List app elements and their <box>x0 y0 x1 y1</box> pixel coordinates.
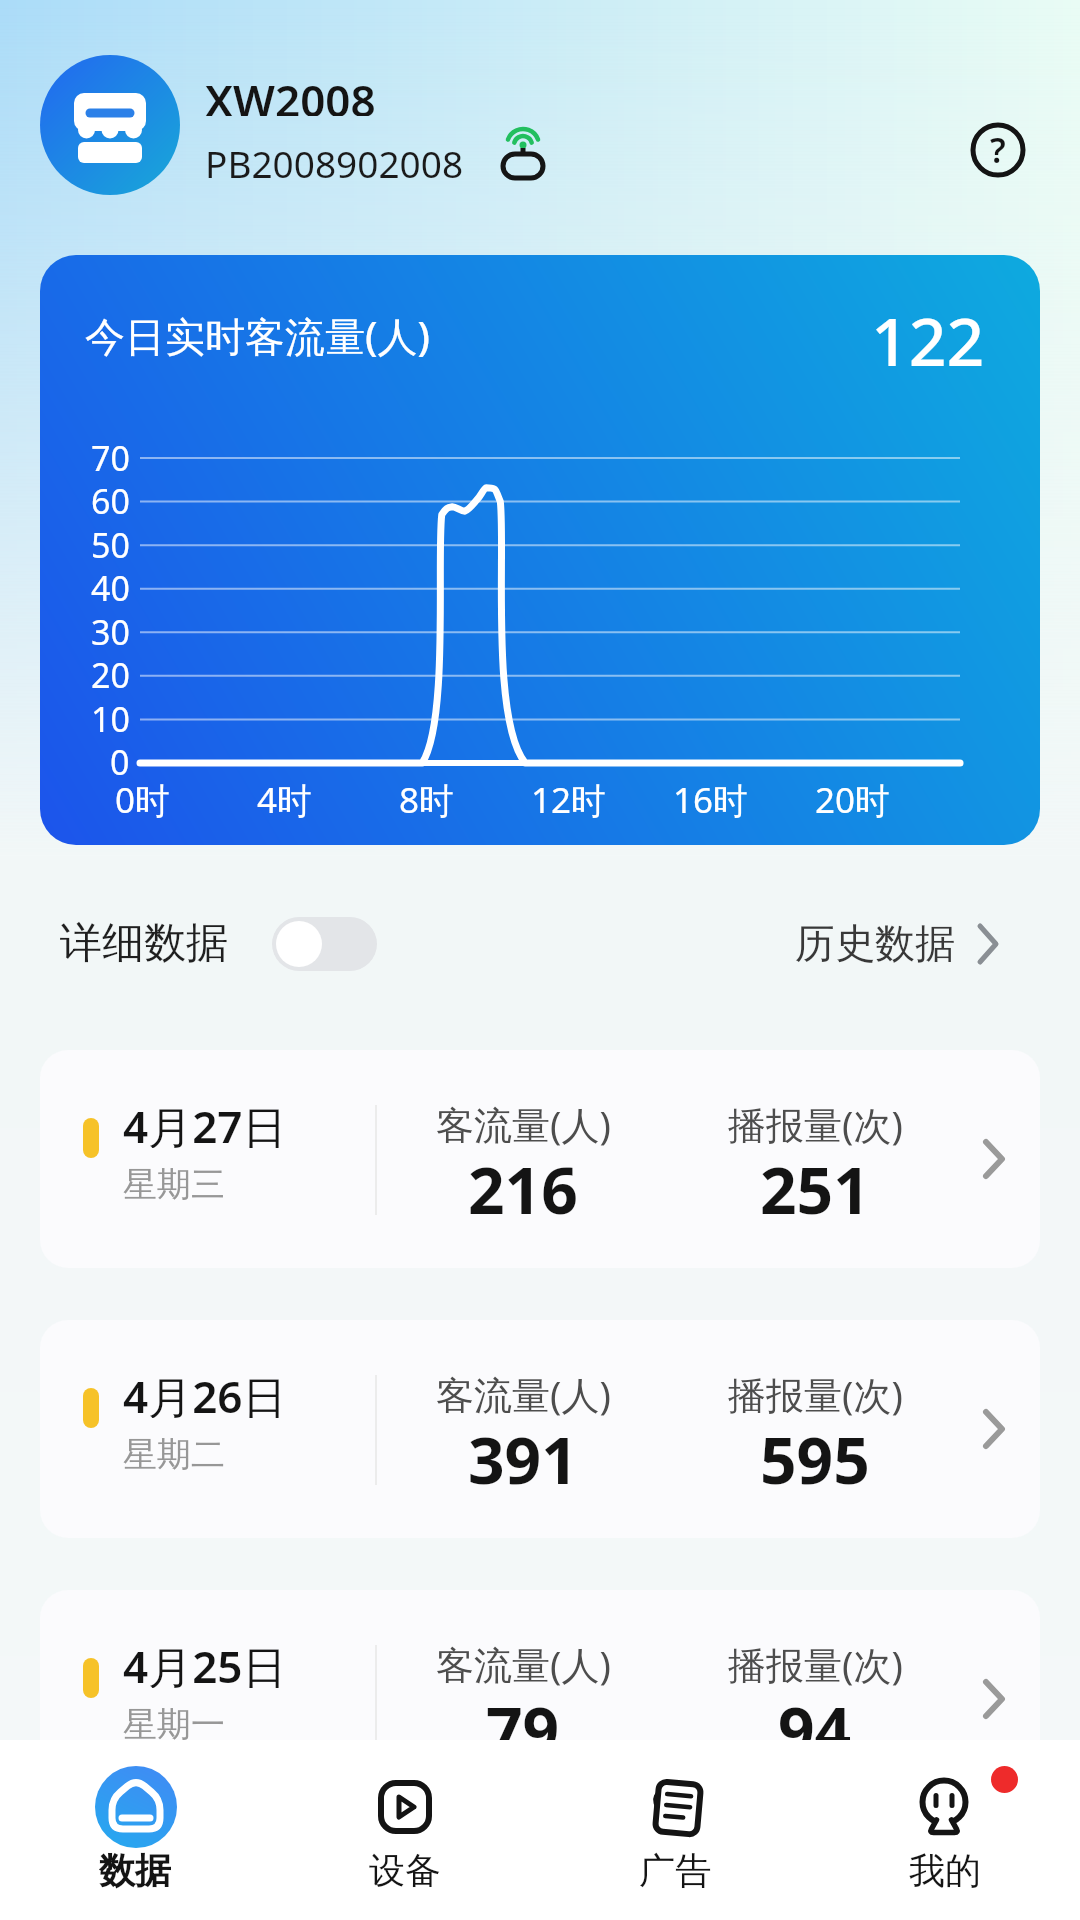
staticText: 播报量(次) <box>728 1098 903 1146</box>
staticText: 0 <box>110 739 130 785</box>
staticText: 391 <box>468 1416 578 1500</box>
staticText: PB2008902008 <box>205 138 464 184</box>
staticText: 20时 <box>815 776 891 820</box>
staticText: 详细数据 <box>60 917 228 970</box>
staticText: XW2008 <box>205 70 376 116</box>
staticText: 我的 <box>909 1848 981 1892</box>
staticText: 历史数据 <box>795 918 955 968</box>
staticText: 60 <box>91 478 130 524</box>
staticText: 星期二 <box>123 1433 225 1476</box>
staticText: 595 <box>760 1416 870 1500</box>
button[interactable]: ? <box>970 122 1026 178</box>
staticText: 4月26日 <box>123 1366 287 1418</box>
button[interactable]: 4月25日 <box>40 1590 1040 1808</box>
button[interactable] <box>272 917 377 971</box>
staticText: 0时 <box>115 776 171 820</box>
staticText: 216 <box>468 1146 578 1230</box>
staticText: 30 <box>91 609 130 655</box>
staticText: 70 <box>91 435 130 481</box>
staticText: ? <box>990 127 1006 173</box>
button[interactable]: 数据 <box>40 1745 230 1915</box>
staticText: 16时 <box>673 776 749 820</box>
staticText: 播报量(次) <box>728 1368 903 1416</box>
staticText: 8时 <box>399 776 455 820</box>
staticText: 4时 <box>257 776 313 820</box>
staticText: 122 <box>871 295 985 375</box>
staticText: 今日实时客流量(人) <box>85 308 430 363</box>
staticText: 客流量(人) <box>436 1638 611 1686</box>
staticText: 广告 <box>639 1848 711 1892</box>
button[interactable]: 历史数据 <box>745 905 955 981</box>
staticText: 播报量(次) <box>728 1638 903 1686</box>
button[interactable]: 4月26日 <box>40 1320 1040 1538</box>
staticText: 设备 <box>369 1848 441 1892</box>
button[interactable]: 4月27日 <box>40 1050 1040 1268</box>
staticText: 4月27日 <box>123 1096 287 1148</box>
button[interactable]: 我的 <box>850 1745 1040 1915</box>
staticText: 50 <box>91 522 130 568</box>
button[interactable]: 广告 <box>580 1745 770 1915</box>
staticText: 10 <box>91 696 130 742</box>
staticText: 客流量(人) <box>436 1098 611 1146</box>
staticText: 星期一 <box>123 1703 225 1746</box>
staticText: 数据 <box>99 1848 171 1892</box>
staticText: 40 <box>91 565 130 611</box>
staticText: 251 <box>760 1146 870 1230</box>
button[interactable]: 设备 <box>310 1745 500 1915</box>
staticText: 4月25日 <box>123 1636 287 1688</box>
staticText: 79 <box>486 1686 560 1770</box>
button[interactable]: 今日实时客流量(人) <box>40 255 1040 845</box>
staticText: 客流量(人) <box>436 1368 611 1416</box>
staticText: 94 <box>778 1686 852 1770</box>
staticText: 12时 <box>531 776 607 820</box>
staticText: 20 <box>91 652 130 698</box>
button[interactable] <box>40 55 180 195</box>
staticText: 星期三 <box>123 1163 225 1206</box>
